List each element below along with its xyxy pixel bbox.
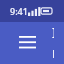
staticText: Inbox: [52, 22, 54, 64]
button[interactable]: Open navigation menu: [10, 26, 44, 60]
staticText: 9:41: [10, 5, 28, 17]
